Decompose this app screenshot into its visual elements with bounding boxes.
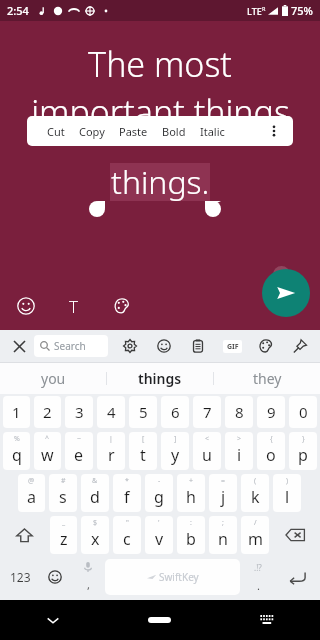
button[interactable]: Settings (118, 334, 142, 358)
button[interactable]: 7 (193, 396, 221, 428)
button[interactable]: 3 (65, 396, 93, 428)
button[interactable]: & (81, 474, 109, 512)
button[interactable]: } (289, 432, 317, 470)
button[interactable]: ] (161, 432, 189, 470)
button[interactable]: = (209, 474, 237, 512)
staticText: [ (142, 434, 145, 444)
staticText: + (189, 476, 194, 486)
staticText: k (251, 486, 260, 508)
button[interactable]: Copy (72, 124, 112, 139)
button[interactable]: / (241, 516, 269, 554)
staticText: b (186, 528, 196, 550)
staticText: z (60, 528, 68, 550)
staticText: The most (88, 41, 232, 87)
button[interactable]: ; (209, 516, 237, 554)
button[interactable]: Space (105, 559, 240, 595)
button[interactable]: Back (0, 600, 106, 640)
button[interactable]: Clipboard (186, 334, 210, 358)
button[interactable]: 2 (34, 396, 61, 428)
button[interactable]: - (145, 474, 173, 512)
button[interactable]: Text formatting (60, 292, 88, 320)
button[interactable]: 9 (257, 396, 285, 428)
staticText: ; (222, 518, 224, 528)
button[interactable]: @ (18, 474, 45, 512)
button[interactable]: ~ (65, 432, 93, 470)
staticText: w (41, 444, 54, 466)
staticText: $ (93, 518, 98, 528)
staticText: 3 (75, 402, 84, 422)
staticText: " (126, 518, 129, 528)
staticText: things. (111, 160, 210, 204)
button[interactable]: Home (106, 600, 213, 640)
staticText: d (90, 486, 100, 508)
button[interactable]: | (97, 432, 125, 470)
button[interactable]: Bold (155, 124, 193, 139)
button[interactable]: Stickers (152, 334, 176, 358)
staticText: { (270, 434, 273, 444)
button[interactable]: Shift (1, 514, 48, 556)
staticText: 4 (107, 402, 116, 422)
button[interactable]: 6 (161, 396, 189, 428)
button[interactable]: things (107, 363, 213, 394)
button[interactable]: Backspace (271, 514, 319, 556)
button[interactable]: Search (34, 335, 108, 357)
button[interactable]: you (0, 363, 106, 394)
button[interactable]: ( (241, 474, 269, 512)
staticText: c (123, 528, 131, 550)
button[interactable]: Switch keyboard (213, 600, 320, 640)
button[interactable]: Color palette (108, 292, 136, 320)
staticText: t (140, 444, 146, 466)
staticText: p (298, 444, 308, 466)
button[interactable]: Send (262, 269, 310, 317)
button[interactable]: > (225, 432, 253, 470)
button[interactable]: ^ (34, 432, 61, 470)
button[interactable]: < (193, 432, 221, 470)
staticText: e (74, 444, 84, 466)
button[interactable]: Voice input (71, 556, 104, 598)
button[interactable]: # (49, 474, 77, 512)
button[interactable]: Enter (274, 556, 319, 598)
staticText: - (158, 476, 161, 486)
button[interactable]: .!? (241, 556, 274, 598)
button[interactable]: Emoji (39, 556, 71, 598)
button[interactable]: 123 (1, 556, 39, 598)
button[interactable]: Italic (193, 124, 232, 139)
button[interactable]: Pin toolbar (288, 334, 312, 358)
button[interactable]: " (113, 516, 141, 554)
button[interactable]: ' (145, 516, 173, 554)
staticText: 123 (10, 569, 31, 585)
button[interactable]: [ (129, 432, 157, 470)
button[interactable]: More options (264, 121, 284, 141)
staticText: m (248, 528, 263, 550)
staticText: s (59, 486, 67, 508)
button[interactable]: Close (8, 335, 30, 357)
button[interactable]: 4 (97, 396, 125, 428)
staticText: / (254, 518, 257, 528)
staticText: 0 (299, 402, 308, 422)
button[interactable]: Emoji (12, 292, 40, 320)
button[interactable]: Themes (254, 334, 278, 358)
button[interactable]: 1 (3, 396, 30, 428)
button[interactable]: % (3, 432, 30, 470)
button[interactable]: Cut (40, 124, 72, 139)
button[interactable]: _ (50, 516, 77, 554)
button[interactable]: * (113, 474, 141, 512)
staticText: ~ (77, 434, 82, 444)
button[interactable]: Paste (112, 124, 155, 139)
staticText: 2 (43, 402, 52, 422)
button[interactable]: GIF (220, 334, 244, 358)
staticText: . (257, 578, 260, 593)
staticText: T (69, 295, 79, 318)
button[interactable]: ) (273, 474, 301, 512)
staticText: 7 (203, 402, 212, 422)
button[interactable]: + (177, 474, 205, 512)
button[interactable]: { (257, 432, 285, 470)
button[interactable]: $ (81, 516, 109, 554)
button[interactable]: 5 (129, 396, 157, 428)
button[interactable]: 0 (289, 396, 317, 428)
button[interactable]: 8 (225, 396, 253, 428)
button[interactable]: : (177, 516, 205, 554)
staticText: % (14, 434, 20, 444)
button[interactable]: they (214, 363, 320, 394)
staticText: things (138, 369, 182, 388)
